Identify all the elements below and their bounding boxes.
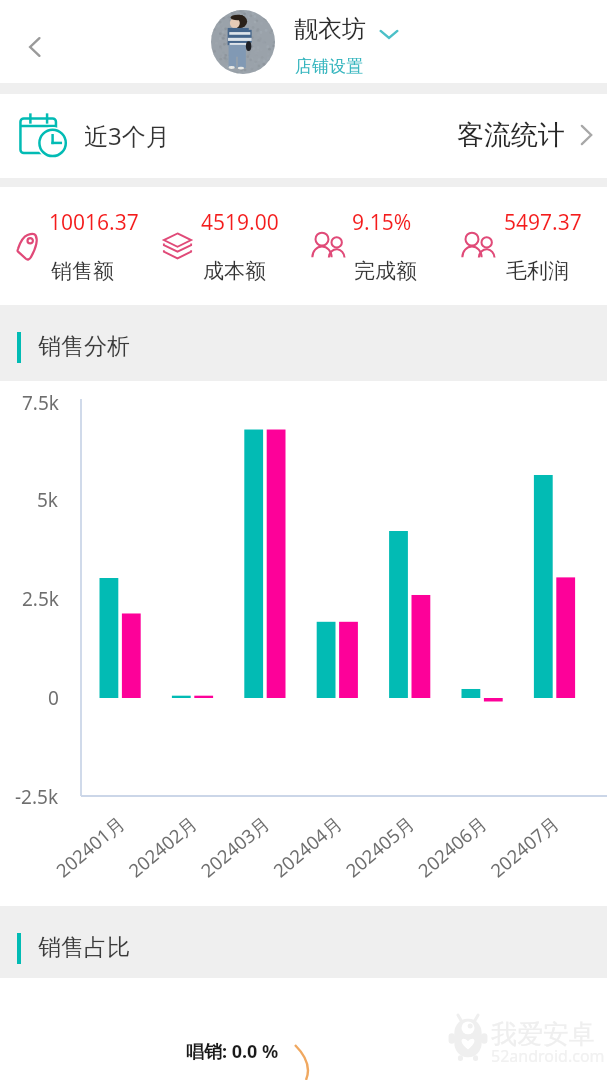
staticText: 毛利润 <box>506 258 569 284</box>
button[interactable]: 客流统计 <box>457 118 599 152</box>
staticText: 唱销: 0.0 % <box>186 1039 279 1064</box>
button[interactable]: 店铺设置 <box>295 56 363 77</box>
button[interactable]: 靓衣坊 <box>294 14 366 44</box>
staticText: 我爱安卓 <box>491 1018 595 1051</box>
staticText: 销售占比 <box>38 933 130 962</box>
staticText: 靓衣坊 <box>294 14 366 44</box>
staticText: 客流统计 <box>457 118 565 152</box>
button[interactable]: 近3个月 <box>19 111 170 159</box>
button[interactable]: Switch shop <box>375 20 403 48</box>
staticText: 9.15% <box>352 208 412 237</box>
staticText: 近3个月 <box>84 119 170 152</box>
button[interactable]: Back <box>14 26 56 68</box>
staticText: 10016.37 <box>49 208 139 237</box>
staticText: 店铺设置 <box>295 56 363 77</box>
button[interactable] <box>455 187 607 305</box>
staticText: 52android.com <box>491 1045 605 1067</box>
staticText: 销售额 <box>51 258 114 284</box>
staticText: 4519.00 <box>201 208 279 237</box>
staticText: 成本额 <box>203 258 266 284</box>
staticText: 完成额 <box>354 258 417 284</box>
button[interactable] <box>152 187 304 305</box>
button[interactable] <box>0 187 152 305</box>
staticText: 5497.37 <box>504 208 582 237</box>
staticText: 销售分析 <box>38 332 130 361</box>
button[interactable] <box>304 187 456 305</box>
